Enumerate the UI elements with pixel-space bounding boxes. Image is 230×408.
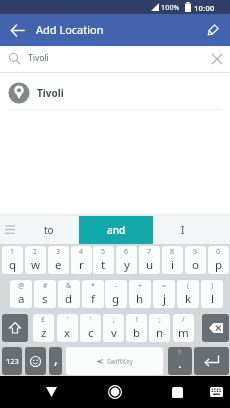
button[interactable]: ; [149, 314, 170, 342]
button[interactable] [36, 376, 66, 408]
staticText: 4 [79, 247, 84, 257]
button[interactable]: @ [10, 280, 32, 308]
staticText: / [182, 315, 185, 325]
staticText: 3 [56, 247, 61, 257]
staticText: p [215, 257, 223, 273]
staticText: 8 [170, 247, 175, 257]
button[interactable]: 1 [2, 246, 23, 274]
staticText: !? [178, 349, 182, 356]
staticText: d [65, 291, 73, 307]
staticText: and [107, 223, 126, 237]
button[interactable]: ' [80, 314, 101, 342]
staticText: i [171, 257, 174, 273]
button[interactable]: !? [168, 347, 192, 375]
button[interactable]: ( [177, 280, 199, 308]
staticText: w [31, 257, 41, 273]
staticText: q [9, 257, 17, 273]
button[interactable]: / [173, 314, 194, 342]
staticText: ; [159, 315, 161, 325]
button[interactable] [162, 376, 192, 408]
button[interactable] [194, 347, 229, 375]
staticText: Add Location [36, 22, 104, 37]
staticText: e [55, 257, 62, 273]
staticText: u [146, 257, 154, 273]
staticText: + [138, 281, 143, 291]
staticText: o [192, 257, 199, 273]
button[interactable]: I [154, 216, 212, 244]
staticText: £ [41, 315, 46, 325]
button[interactable]: + [129, 280, 151, 308]
staticText: 123 [6, 356, 19, 366]
staticText: ' [90, 315, 92, 325]
staticText: , [54, 349, 58, 368]
button[interactable]: , [49, 347, 62, 375]
button[interactable] [202, 314, 229, 342]
button[interactable]: £ [33, 314, 54, 342]
staticText: x [64, 325, 71, 341]
staticText: k [185, 291, 192, 307]
staticText: ; [113, 315, 115, 325]
staticText: b [133, 325, 141, 341]
button[interactable]: & [58, 280, 80, 308]
button[interactable] [206, 48, 228, 70]
staticText: s [42, 291, 48, 307]
button[interactable]: 0 [208, 246, 229, 274]
staticText: m [178, 325, 189, 341]
staticText: 5 [101, 247, 106, 257]
button[interactable]: Tivoli [0, 73, 230, 109]
staticText: g [112, 291, 120, 307]
button[interactable]: to [20, 216, 78, 244]
button[interactable]: 2 [25, 246, 46, 274]
button[interactable] [203, 376, 230, 408]
staticText: 100% [161, 3, 180, 13]
staticText: ' [67, 315, 69, 325]
button[interactable]: - [105, 280, 127, 308]
staticText: = [162, 281, 167, 291]
staticText: n [156, 325, 164, 341]
staticText: # [43, 281, 48, 291]
staticText: 2 [33, 247, 38, 257]
button[interactable]: 8 [162, 246, 183, 274]
button[interactable]: ! [126, 314, 147, 342]
staticText: @ [18, 281, 25, 291]
staticText: I [181, 223, 185, 237]
staticText: 0 [216, 247, 221, 257]
staticText: 6 [124, 247, 129, 257]
staticText: . [178, 354, 182, 372]
staticText: ! [136, 315, 138, 325]
button[interactable] [2, 314, 28, 342]
staticText: to [44, 223, 54, 237]
button[interactable]: and [79, 216, 153, 244]
button[interactable]: 4 [71, 246, 92, 274]
button[interactable]: 6 [116, 246, 137, 274]
staticText: h [136, 291, 144, 307]
button[interactable] [25, 347, 46, 375]
staticText: & [66, 281, 72, 291]
staticText: 7 [147, 247, 152, 257]
staticText: y [124, 257, 130, 273]
staticText: z [41, 325, 47, 341]
staticText: Tivoli [37, 86, 64, 100]
button[interactable] [100, 376, 130, 408]
button[interactable]: 3 [48, 246, 69, 274]
button[interactable]: 9 [185, 246, 206, 274]
button[interactable]: SwiftKey [66, 347, 163, 375]
staticText: - [115, 281, 118, 291]
button[interactable] [4, 16, 30, 44]
button[interactable]: = [153, 280, 175, 308]
staticText: ) [211, 281, 214, 291]
staticText: t [101, 257, 106, 273]
button[interactable]: Tivoli [0, 46, 230, 72]
staticText: a [18, 291, 25, 307]
button[interactable]: ) [201, 280, 223, 308]
staticText: 9 [193, 247, 198, 257]
staticText: * [91, 281, 95, 291]
button[interactable]: # [34, 280, 56, 308]
button[interactable]: ' [57, 314, 78, 342]
button[interactable]: 5 [93, 246, 114, 274]
button[interactable]: ; [103, 314, 124, 342]
button[interactable]: * [82, 280, 104, 308]
button[interactable] [198, 16, 226, 44]
button[interactable]: 123 [2, 347, 22, 375]
button[interactable]: 7 [139, 246, 160, 274]
